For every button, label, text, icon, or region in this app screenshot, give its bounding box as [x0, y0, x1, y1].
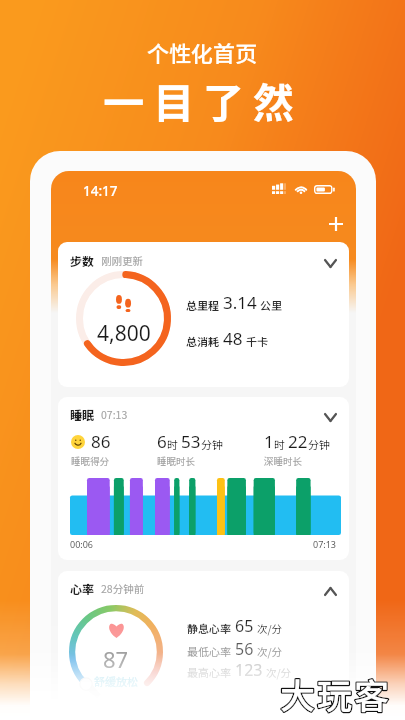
staticText: 4,800 — [97, 319, 151, 348]
staticText: 87 — [103, 644, 129, 674]
staticText: 大玩客 — [280, 668, 392, 719]
staticText: 28分钟前 — [101, 581, 145, 596]
staticText: 14:17 — [83, 182, 118, 198]
staticText: 时 — [167, 436, 178, 452]
staticText: 07:13 — [101, 407, 128, 422]
staticText: 时 — [274, 436, 285, 452]
button[interactable]: 心率 — [58, 571, 349, 720]
staticText: 静息心率 — [187, 620, 231, 636]
button[interactable]: Collapse — [320, 253, 340, 273]
staticText: 心率 — [70, 580, 95, 597]
staticText: 00:06 — [70, 538, 94, 550]
button[interactable]: 睡眠 — [58, 397, 349, 560]
staticText: 最低心率 — [187, 643, 231, 659]
button[interactable]: 步数 — [58, 242, 349, 387]
staticText: 步数 — [70, 252, 95, 269]
staticText: 分钟 — [308, 436, 330, 452]
staticText: 分钟 — [201, 436, 223, 452]
staticText: 舒缓放松 — [94, 673, 138, 689]
staticText: 睡眠得分 — [71, 454, 110, 468]
staticText: 3.14 — [223, 291, 257, 314]
staticText: 一目了然 — [103, 70, 303, 129]
staticText: 6 — [157, 430, 167, 453]
staticText: 最高心率 — [187, 664, 231, 680]
staticText: 千卡 — [246, 333, 268, 349]
staticText: 次/分 — [266, 665, 292, 680]
staticText: 深睡时长 — [264, 454, 303, 468]
staticText: 大玩客 — [280, 668, 392, 719]
staticText: 次/分 — [257, 644, 283, 659]
staticText: 个性化首页 — [147, 36, 258, 68]
button[interactable]: Expand — [320, 581, 340, 601]
staticText: 07:13 — [313, 538, 337, 550]
staticText: 刚刚更新 — [101, 253, 143, 268]
button[interactable]: Add — [322, 210, 350, 238]
button[interactable]: Collapse — [320, 407, 340, 427]
staticText: 次/分 — [257, 621, 283, 636]
staticText: 123 — [235, 659, 263, 681]
staticText: 53 — [181, 430, 201, 453]
staticText: 86 — [91, 430, 111, 453]
staticText: 22 — [288, 430, 308, 453]
staticText: 1 — [264, 430, 274, 453]
staticText: 总消耗 — [186, 333, 219, 349]
staticText: 睡眠时长 — [157, 454, 196, 468]
staticText: 总里程 — [186, 297, 219, 313]
staticText: 65 — [235, 615, 254, 637]
staticText: 公里 — [260, 297, 282, 313]
staticText: 56 — [235, 638, 254, 660]
staticText: 睡眠 — [70, 406, 95, 423]
staticText: 48 — [223, 327, 243, 350]
